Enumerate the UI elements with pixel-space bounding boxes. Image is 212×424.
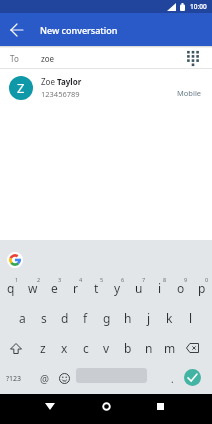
button[interactable]: b xyxy=(117,333,138,363)
button[interactable] xyxy=(102,402,111,411)
staticText: 7 xyxy=(142,276,146,283)
staticText: 5 xyxy=(100,276,104,283)
button[interactable]: a xyxy=(11,303,33,333)
staticText: z xyxy=(40,340,46,356)
staticText: Zoe Taylor xyxy=(41,76,82,87)
staticText: r xyxy=(73,280,78,296)
button[interactable]: g xyxy=(96,303,117,333)
staticText: . xyxy=(171,372,174,386)
staticText: d xyxy=(61,310,69,326)
button[interactable]: j xyxy=(138,303,159,333)
staticText: u xyxy=(135,280,143,296)
staticText: f xyxy=(83,310,88,326)
button[interactable]: n xyxy=(138,333,159,363)
button[interactable]: q xyxy=(0,273,22,303)
staticText: t xyxy=(94,280,99,296)
button[interactable]: e xyxy=(44,273,65,303)
staticText: 4 xyxy=(79,276,83,283)
staticText: p xyxy=(198,280,206,296)
staticText: o xyxy=(177,280,185,296)
button[interactable] xyxy=(180,333,212,363)
staticText: Mobile xyxy=(177,88,202,98)
button[interactable] xyxy=(184,369,201,386)
staticText: b xyxy=(124,340,132,356)
button[interactable] xyxy=(186,50,200,67)
button[interactable]: p xyxy=(191,273,212,303)
staticText: q xyxy=(7,280,15,296)
button[interactable]: k xyxy=(159,303,180,333)
button[interactable]: s xyxy=(33,303,54,333)
staticText: n xyxy=(145,340,153,356)
button[interactable]: c xyxy=(75,333,96,363)
staticText: @ xyxy=(40,372,49,386)
button[interactable] xyxy=(45,403,55,410)
button[interactable]: m xyxy=(159,333,180,363)
button[interactable]: . xyxy=(164,363,180,394)
staticText: w xyxy=(28,280,38,296)
staticText: To xyxy=(10,53,19,64)
button[interactable] xyxy=(11,24,23,36)
staticText: a xyxy=(19,310,26,326)
staticText: k xyxy=(166,310,173,326)
staticText: 2 xyxy=(37,276,41,283)
staticText: g xyxy=(103,310,111,326)
button[interactable]: v xyxy=(96,333,117,363)
staticText: h xyxy=(124,310,132,326)
staticText: x xyxy=(61,340,68,356)
staticText: New conversation xyxy=(40,24,118,36)
staticText: 0 xyxy=(205,276,209,283)
staticText: l xyxy=(189,310,193,326)
button[interactable]: o xyxy=(170,273,191,303)
staticText: c xyxy=(83,340,89,356)
button[interactable]: r xyxy=(65,273,86,303)
staticText: 9 xyxy=(184,276,188,283)
button[interactable]: x xyxy=(54,333,75,363)
staticText: 8 xyxy=(163,276,167,283)
button[interactable]: y xyxy=(107,273,128,303)
staticText: v xyxy=(103,340,110,356)
button[interactable]: w xyxy=(22,273,44,303)
staticText: e xyxy=(51,280,58,296)
button[interactable]: Z xyxy=(0,69,212,106)
staticText: zoe xyxy=(41,53,55,64)
button[interactable]: f xyxy=(75,303,96,333)
button[interactable]: ?123 xyxy=(0,363,28,394)
staticText: 3 xyxy=(58,276,62,283)
staticText: y xyxy=(114,280,121,296)
button[interactable]: h xyxy=(117,303,138,333)
button[interactable]: d xyxy=(54,303,75,333)
button[interactable]: To xyxy=(0,46,212,69)
button[interactable]: z xyxy=(32,333,54,363)
button[interactable]: t xyxy=(86,273,107,303)
button[interactable]: i xyxy=(149,273,170,303)
button[interactable]: l xyxy=(180,303,201,333)
staticText: 10:00 xyxy=(190,2,207,11)
button[interactable]: u xyxy=(128,273,149,303)
staticText: m xyxy=(164,340,176,356)
staticText: 123456789 xyxy=(41,89,80,99)
staticText: ?123 xyxy=(6,374,22,384)
button[interactable] xyxy=(55,363,74,394)
button[interactable] xyxy=(0,333,32,363)
button[interactable]: @ xyxy=(35,363,54,394)
staticText: 6 xyxy=(121,276,125,283)
staticText: Z xyxy=(17,79,25,97)
staticText: 1 xyxy=(15,276,19,283)
staticText: i xyxy=(158,280,162,296)
staticText: s xyxy=(41,310,47,326)
staticText: j xyxy=(147,310,151,326)
